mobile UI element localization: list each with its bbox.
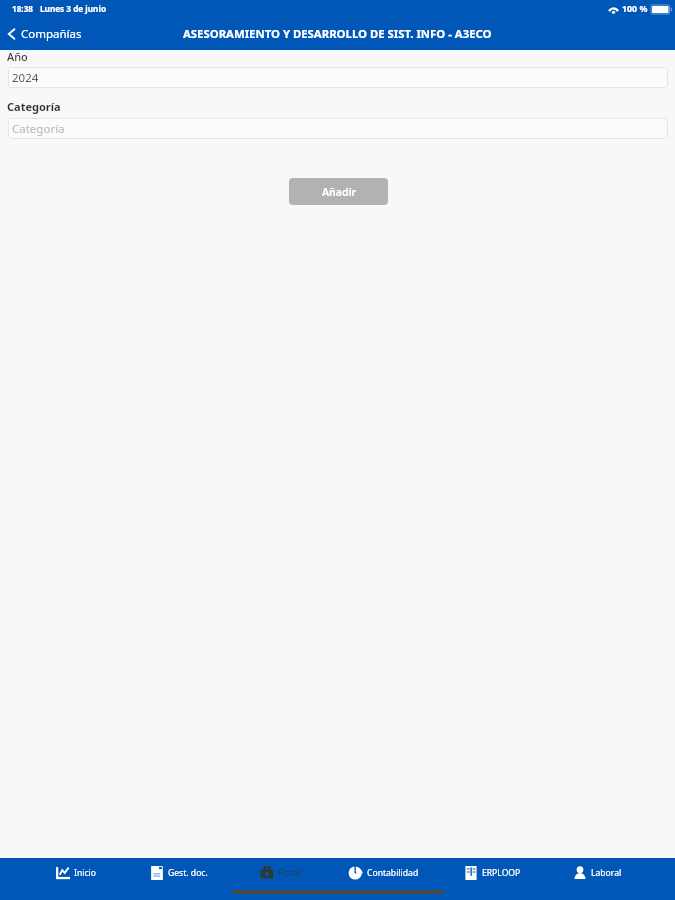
- staticText: Contabilidad: [367, 867, 419, 879]
- staticText: 18:38: [12, 3, 34, 14]
- staticText: Lunes 3 de junio: [40, 3, 106, 14]
- staticText: Categoría: [12, 121, 65, 137]
- staticText: Año: [7, 49, 28, 64]
- staticText: ASESORAMIENTO Y DESARROLLO DE SIST. INFO…: [183, 26, 492, 41]
- staticText: Gest. doc.: [168, 867, 208, 879]
- staticText: Compañías: [21, 26, 82, 42]
- staticText: 100 %: [622, 3, 648, 15]
- staticText: Inicio: [74, 867, 96, 879]
- button[interactable]: Gest. doc.: [117, 855, 241, 891]
- other: Back: [7, 27, 16, 41]
- button[interactable]: Inicio: [36, 855, 116, 891]
- button[interactable]: Añadir: [289, 178, 388, 205]
- staticText: Fiscal: [278, 867, 300, 879]
- button[interactable]: 2024: [8, 67, 668, 88]
- button[interactable]: Back: [0, 22, 88, 46]
- staticText: Añadir: [322, 185, 356, 199]
- button[interactable]: Fiscal: [234, 855, 326, 891]
- button[interactable]: ERPLOOP: [436, 855, 548, 891]
- staticText: 2024: [12, 70, 39, 86]
- button[interactable]: Laboral: [547, 855, 647, 891]
- staticText: ERPLOOP: [482, 867, 521, 879]
- button[interactable]: Categoría: [8, 118, 668, 139]
- button[interactable]: Contabilidad: [314, 855, 454, 891]
- staticText: Laboral: [591, 867, 622, 879]
- staticText: Categoría: [7, 99, 61, 114]
